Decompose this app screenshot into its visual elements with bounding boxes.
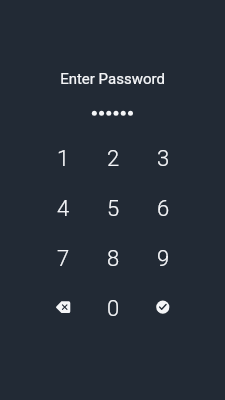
staticText: 5 bbox=[107, 196, 120, 222]
button[interactable]: 1 bbox=[40, 136, 86, 182]
staticText: 3 bbox=[157, 146, 170, 172]
staticText: 4 bbox=[57, 196, 70, 222]
staticText: 2 bbox=[107, 146, 120, 172]
button[interactable]: 3 bbox=[140, 136, 186, 182]
staticText: Enter Password bbox=[60, 70, 165, 88]
button[interactable]: 5 bbox=[90, 186, 136, 232]
staticText: 9 bbox=[157, 246, 170, 272]
button[interactable]: 6 bbox=[140, 186, 186, 232]
button[interactable]: 0 bbox=[90, 286, 136, 332]
button[interactable]: 9 bbox=[140, 236, 186, 282]
staticText: 7 bbox=[57, 246, 70, 272]
staticText: 1 bbox=[57, 146, 70, 172]
staticText: 0 bbox=[107, 296, 120, 322]
staticText: 8 bbox=[107, 246, 120, 272]
staticText: 6 bbox=[157, 196, 170, 222]
button[interactable]: Confirm bbox=[140, 286, 186, 332]
button[interactable]: 4 bbox=[40, 186, 86, 232]
button[interactable]: 2 bbox=[90, 136, 136, 182]
button[interactable]: 8 bbox=[90, 236, 136, 282]
button[interactable]: 7 bbox=[40, 236, 86, 282]
button[interactable]: Delete bbox=[40, 286, 86, 332]
